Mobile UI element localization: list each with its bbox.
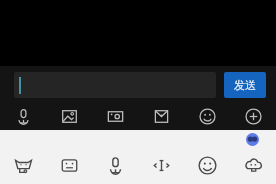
button[interactable]: Red packet bbox=[138, 103, 184, 130]
button[interactable]: Voice input bbox=[92, 138, 138, 184]
button[interactable]: More bbox=[230, 103, 276, 130]
button[interactable] bbox=[14, 72, 216, 98]
button[interactable]: Move cursor bbox=[138, 138, 184, 184]
button[interactable]: 发送 bbox=[224, 72, 266, 98]
button[interactable]: Keyboard bbox=[46, 138, 92, 184]
button[interactable]: Emoji bbox=[184, 138, 230, 184]
button[interactable]: Cloud input bbox=[230, 138, 276, 184]
button[interactable]: Camera bbox=[92, 103, 138, 130]
other: Badge bbox=[246, 133, 259, 146]
button[interactable]: Sogou input bbox=[0, 138, 46, 184]
button[interactable]: Voice message bbox=[0, 103, 46, 130]
button[interactable]: Emoji bbox=[184, 103, 230, 130]
staticText: 发送 bbox=[234, 78, 256, 92]
button[interactable]: Photo bbox=[46, 103, 92, 130]
